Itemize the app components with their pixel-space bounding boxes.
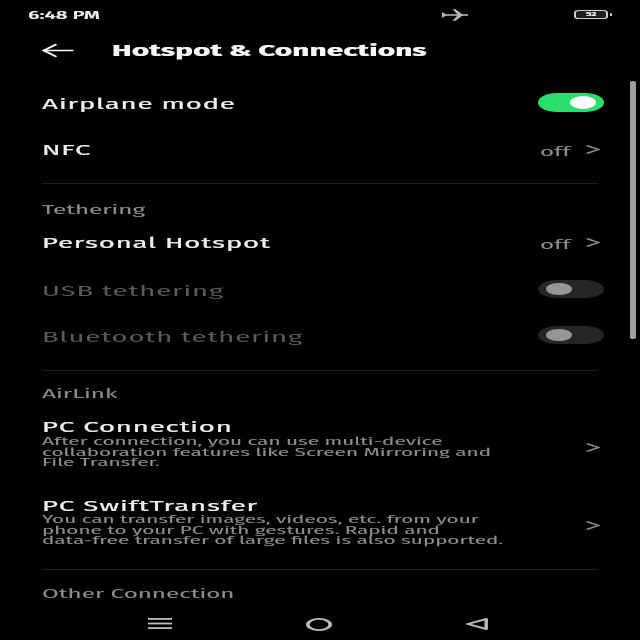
staticText: NFC (42, 141, 92, 159)
staticText: After connection, you can use multi-devi… (42, 434, 444, 448)
button[interactable]: Back (28, 34, 88, 66)
staticText: data-free transfer of large files is als… (42, 533, 504, 547)
staticText: 6:48 PM (28, 8, 102, 22)
button[interactable]: NFC (0, 126, 640, 172)
staticText: Hotspot & Connections (112, 41, 428, 61)
staticText: File Transfer. (42, 455, 160, 469)
staticText: off (540, 143, 572, 159)
staticText: collaboration features like Screen Mirro… (42, 445, 492, 459)
staticText: Tethering (42, 201, 146, 217)
button[interactable]: Airplane mode (0, 80, 640, 126)
staticText: PC SwiftTransfer (42, 497, 260, 515)
staticText: phone to your PC with gestures. Rapid an… (42, 523, 440, 537)
staticText: You can transfer images, videos, etc. fr… (42, 512, 480, 526)
staticText: Airplane mode (42, 95, 236, 113)
button[interactable]: Home (292, 612, 344, 636)
other: Airplane mode (442, 9, 468, 21)
button[interactable]: USB tethering (0, 267, 640, 313)
staticText: AirLink (42, 385, 118, 401)
button[interactable]: Recents (134, 611, 186, 635)
button[interactable]: PC SwiftTransfer (0, 486, 640, 541)
button[interactable]: PC Connection (0, 407, 640, 463)
staticText: Personal Hotspot (42, 234, 272, 252)
staticText: 52 (586, 11, 598, 18)
staticText: USB tethering (42, 282, 226, 300)
staticText: PC Connection (42, 418, 234, 436)
button[interactable]: Bluetooth tethering (0, 313, 640, 359)
button[interactable]: Personal Hotspot (0, 219, 640, 265)
button[interactable]: Back (450, 612, 502, 636)
staticText: Other Connection (42, 585, 236, 601)
staticText: Bluetooth tethering (42, 328, 304, 346)
staticText: off (540, 236, 572, 252)
